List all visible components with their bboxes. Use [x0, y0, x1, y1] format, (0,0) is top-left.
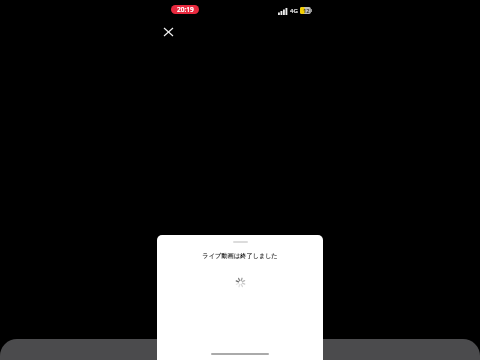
button[interactable]: Close [159, 23, 177, 41]
button[interactable]: Drag handle [233, 241, 248, 243]
button[interactable]: Player controls [0, 339, 480, 360]
other: Battery 12 percent [300, 7, 312, 14]
staticText: ライブ動画は終了しました [202, 252, 278, 260]
other: Cellular signal [278, 8, 288, 15]
staticText: 12 [303, 7, 310, 14]
button[interactable]: 20:19 [171, 5, 199, 14]
staticText: 20:19 [177, 5, 194, 14]
staticText: 4G [290, 7, 298, 15]
